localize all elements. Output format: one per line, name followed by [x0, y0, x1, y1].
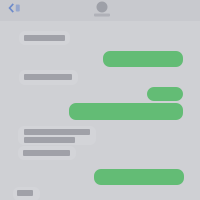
button[interactable]: Sent message	[103, 51, 183, 67]
button[interactable]: Received message	[19, 70, 78, 85]
button[interactable]: Sent message	[147, 87, 183, 101]
button[interactable]: Received message	[18, 146, 76, 160]
button[interactable]: Back	[2, 0, 26, 16]
button[interactable]: Received message	[19, 31, 70, 45]
button[interactable]: Sent message	[94, 169, 184, 185]
button[interactable]: Received message	[13, 187, 40, 200]
button[interactable]: Sent message	[69, 103, 183, 120]
button[interactable]: Received message	[18, 126, 96, 145]
button[interactable]: Contact profile	[82, 0, 122, 18]
